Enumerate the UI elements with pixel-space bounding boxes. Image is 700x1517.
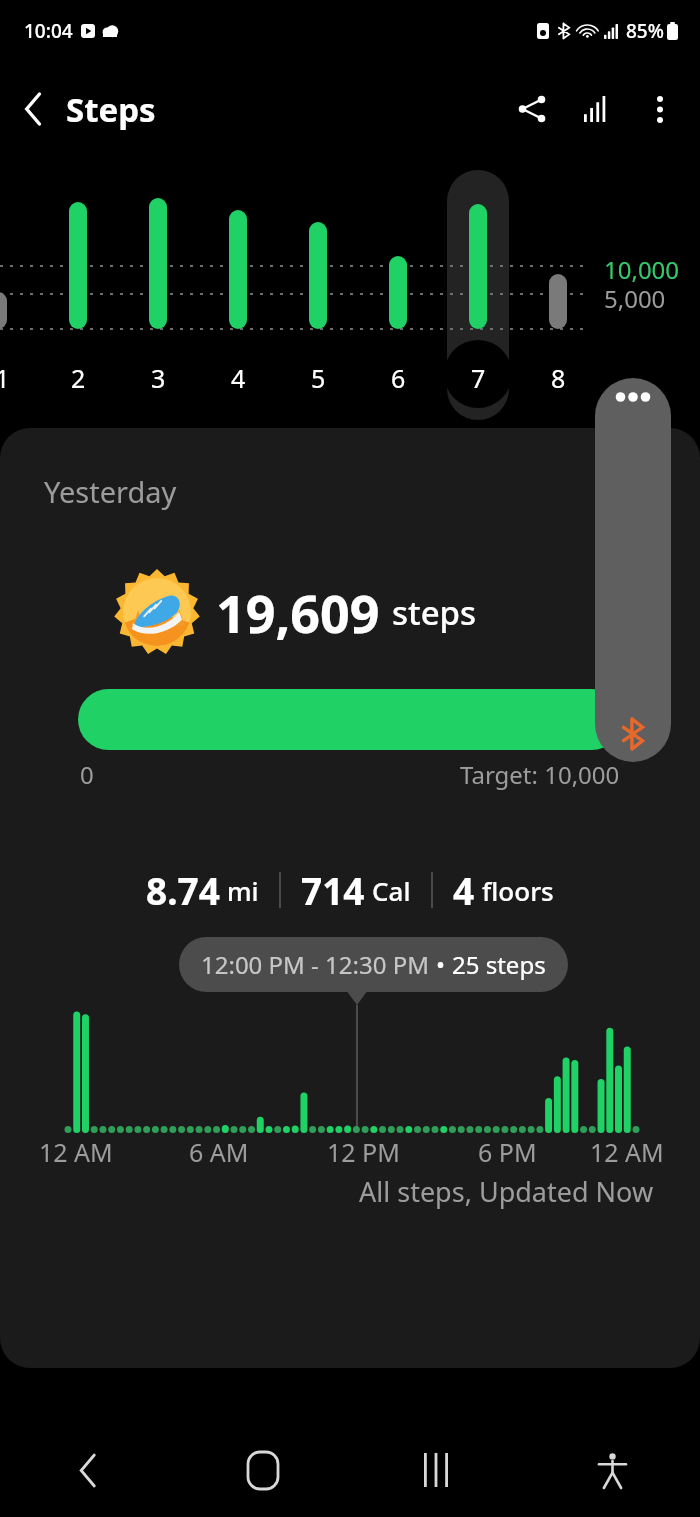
button[interactable]: 12:00 PM - 12:30 PM [179, 937, 568, 992]
staticText: Yesterday [44, 472, 177, 511]
staticText: 25 steps [452, 948, 546, 981]
staticText: floors [482, 873, 554, 908]
staticText: Steps [66, 87, 156, 132]
button[interactable]: Accessibility [525, 1423, 700, 1517]
staticText: 714 [301, 865, 365, 915]
staticText: 4 [231, 361, 246, 395]
staticText: 12 PM [327, 1135, 400, 1169]
staticText: 85% [626, 18, 664, 44]
button[interactable]: Connected watch band [595, 378, 671, 762]
staticText: 12:00 PM - 12:30 PM [201, 948, 436, 981]
staticText: • [436, 948, 452, 981]
button[interactable]: Back [0, 76, 66, 142]
button[interactable]: Statistics [564, 77, 628, 141]
button[interactable]: Back [0, 1423, 175, 1517]
button[interactable]: Yesterday [0, 428, 700, 1368]
staticText: 10,000 [604, 253, 680, 286]
staticText: Cal [372, 873, 411, 908]
staticText: /1 [0, 361, 10, 395]
staticText: 2 [71, 361, 86, 395]
staticText: 3 [151, 361, 166, 395]
staticText: mi [227, 873, 259, 908]
button[interactable]: Home [175, 1423, 350, 1517]
staticText: 5 [311, 361, 326, 395]
staticText: 8 [551, 361, 566, 395]
staticText: 6 AM [189, 1135, 249, 1169]
staticText: 10:04 [24, 18, 73, 44]
staticText: 0 [80, 758, 94, 791]
staticText: All steps, Updated Now [359, 1173, 654, 1210]
staticText: 12 AM [590, 1135, 664, 1169]
staticText: 5,000 [604, 282, 666, 315]
staticText: 19,609 [216, 577, 380, 648]
button[interactable]: Share [500, 77, 564, 141]
staticText: 6 [391, 361, 406, 395]
button[interactable]: More options [628, 77, 692, 141]
button[interactable]: Recents [350, 1423, 525, 1517]
staticText: 6 PM [478, 1135, 537, 1169]
staticText: 12 AM [39, 1135, 113, 1169]
staticText: 4 [453, 865, 475, 915]
staticText: Target: 10,000 [460, 758, 620, 791]
staticText: steps [392, 590, 477, 635]
button[interactable]: 10,000 [0, 156, 700, 428]
staticText: 8.74 [146, 865, 220, 915]
staticText: 7 [471, 361, 486, 395]
